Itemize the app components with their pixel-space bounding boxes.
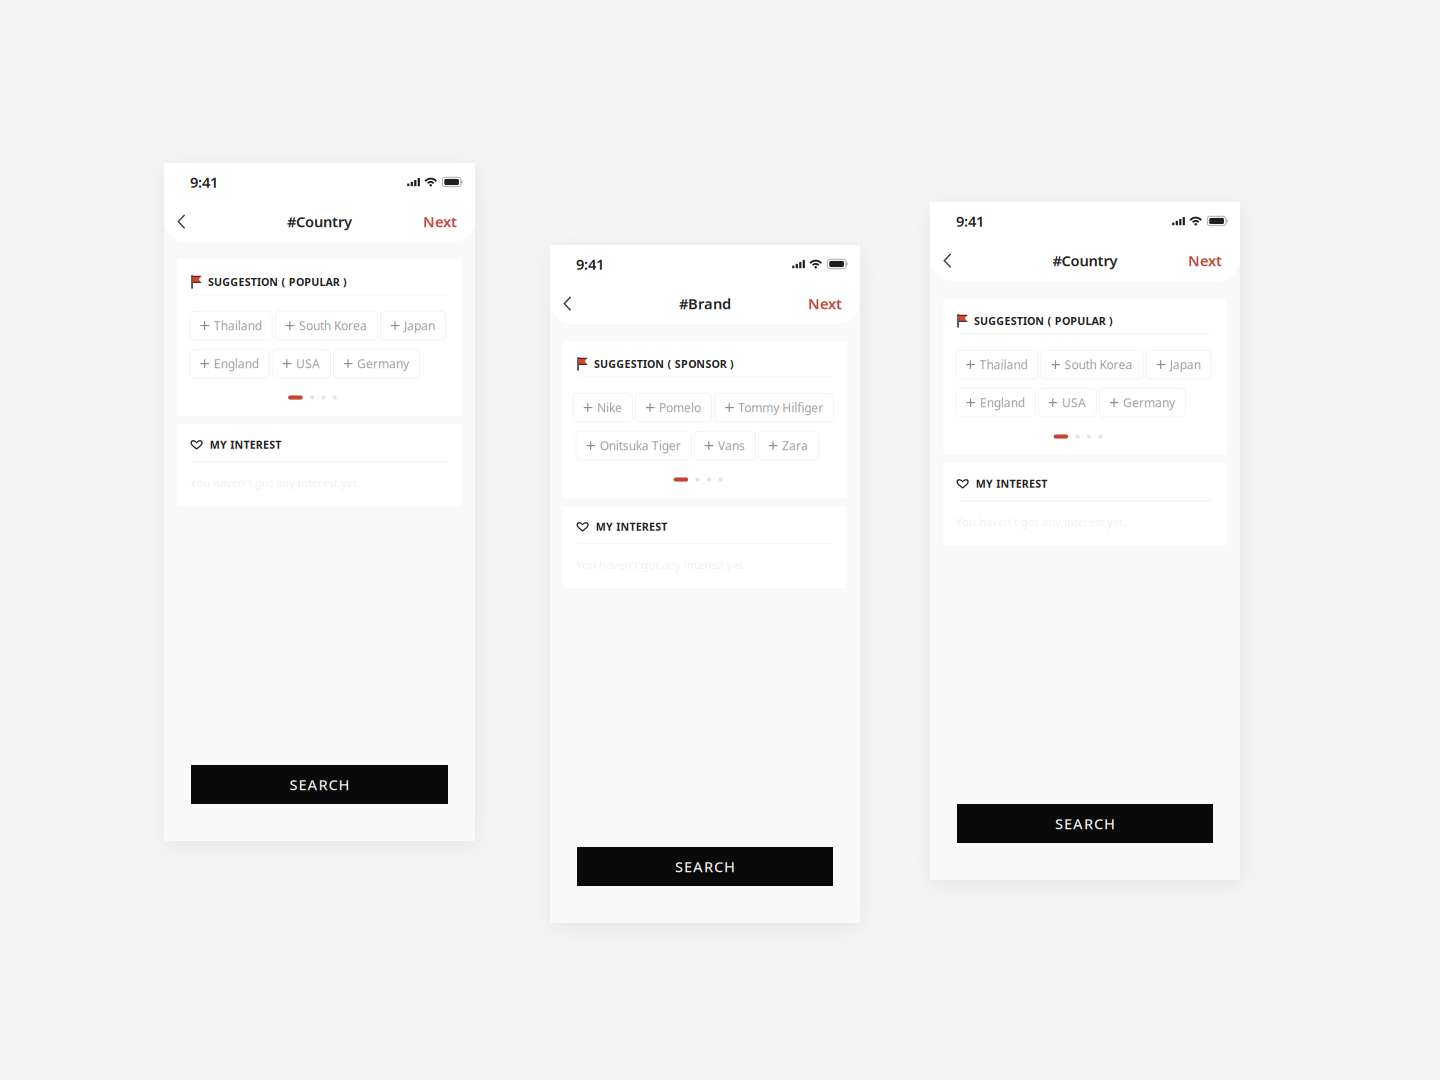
staticText: Nike xyxy=(597,400,622,415)
button[interactable]: SEARCH xyxy=(957,804,1213,843)
button[interactable]: Onitsuka Tiger xyxy=(576,431,691,460)
staticText: MY INTEREST xyxy=(210,437,281,452)
button[interactable]: England xyxy=(956,388,1035,417)
button[interactable]: SEARCH xyxy=(577,847,833,886)
button[interactable]: Back xyxy=(177,205,209,237)
staticText: Thailand xyxy=(214,318,262,333)
staticText: Onitsuka Tiger xyxy=(600,438,681,453)
button[interactable]: Tommy Hilfiger xyxy=(715,393,834,422)
staticText: SEARCH xyxy=(675,857,735,876)
staticText: Next xyxy=(808,294,842,313)
staticText: England xyxy=(980,395,1025,410)
staticText: 9:41 xyxy=(190,172,218,192)
button[interactable]: Japan xyxy=(1146,350,1211,379)
staticText: Vans xyxy=(718,438,745,453)
staticText: MY INTEREST xyxy=(596,519,667,534)
staticText: SEARCH xyxy=(289,775,349,794)
button[interactable]: Thailand xyxy=(956,350,1038,379)
staticText: Japan xyxy=(404,318,435,333)
staticText: Thailand xyxy=(979,357,1027,372)
button[interactable]: Next xyxy=(1188,244,1222,276)
button[interactable]: Japan xyxy=(380,311,446,340)
button[interactable]: Back xyxy=(563,287,595,319)
staticText: England xyxy=(214,356,259,371)
staticText: SUGGESTION ( POPULAR ) xyxy=(974,314,1113,328)
button[interactable]: USA xyxy=(1038,388,1096,417)
staticText: Next xyxy=(1188,251,1222,270)
staticText: Germany xyxy=(357,356,409,371)
staticText: South Korea xyxy=(1065,357,1133,372)
staticText: Zara xyxy=(782,438,808,453)
staticText: USA xyxy=(296,356,320,371)
button[interactable]: Pomelo xyxy=(635,393,712,422)
button[interactable]: Back xyxy=(943,244,975,276)
staticText: Next xyxy=(423,212,457,231)
staticText: #Brand xyxy=(679,294,731,313)
button[interactable]: Thailand xyxy=(190,311,272,340)
button[interactable]: South Korea xyxy=(1041,350,1143,379)
staticText: You haven't got any interest yet. xyxy=(576,557,746,572)
staticText: MY INTEREST xyxy=(976,476,1047,491)
staticText: You haven't got any interest yet. xyxy=(956,514,1126,529)
button[interactable]: USA xyxy=(272,349,330,378)
button[interactable]: Zara xyxy=(758,431,819,460)
staticText: USA xyxy=(1062,395,1086,410)
staticText: You haven't got any interest yet. xyxy=(190,475,360,490)
staticText: 9:41 xyxy=(576,254,604,274)
staticText: Germany xyxy=(1123,395,1175,410)
staticText: Tommy Hilfiger xyxy=(738,400,823,415)
button[interactable]: Next xyxy=(808,287,842,319)
button[interactable]: South Korea xyxy=(275,311,377,340)
staticText: SEARCH xyxy=(1055,814,1115,833)
staticText: Japan xyxy=(1170,357,1201,372)
staticText: SUGGESTION ( POPULAR ) xyxy=(208,275,347,289)
staticText: SUGGESTION ( SPONSOR ) xyxy=(594,357,734,371)
button[interactable]: Germany xyxy=(333,349,420,378)
button[interactable]: England xyxy=(190,349,269,378)
button[interactable]: SEARCH xyxy=(191,765,448,804)
staticText: South Korea xyxy=(299,318,367,333)
staticText: Pomelo xyxy=(659,400,701,415)
staticText: #Country xyxy=(1052,251,1117,270)
button[interactable]: Germany xyxy=(1099,388,1186,417)
button[interactable]: Next xyxy=(423,205,457,237)
button[interactable]: Vans xyxy=(694,431,755,460)
button[interactable]: Nike xyxy=(573,393,632,422)
staticText: 9:41 xyxy=(956,211,984,231)
staticText: #Country xyxy=(287,212,352,231)
